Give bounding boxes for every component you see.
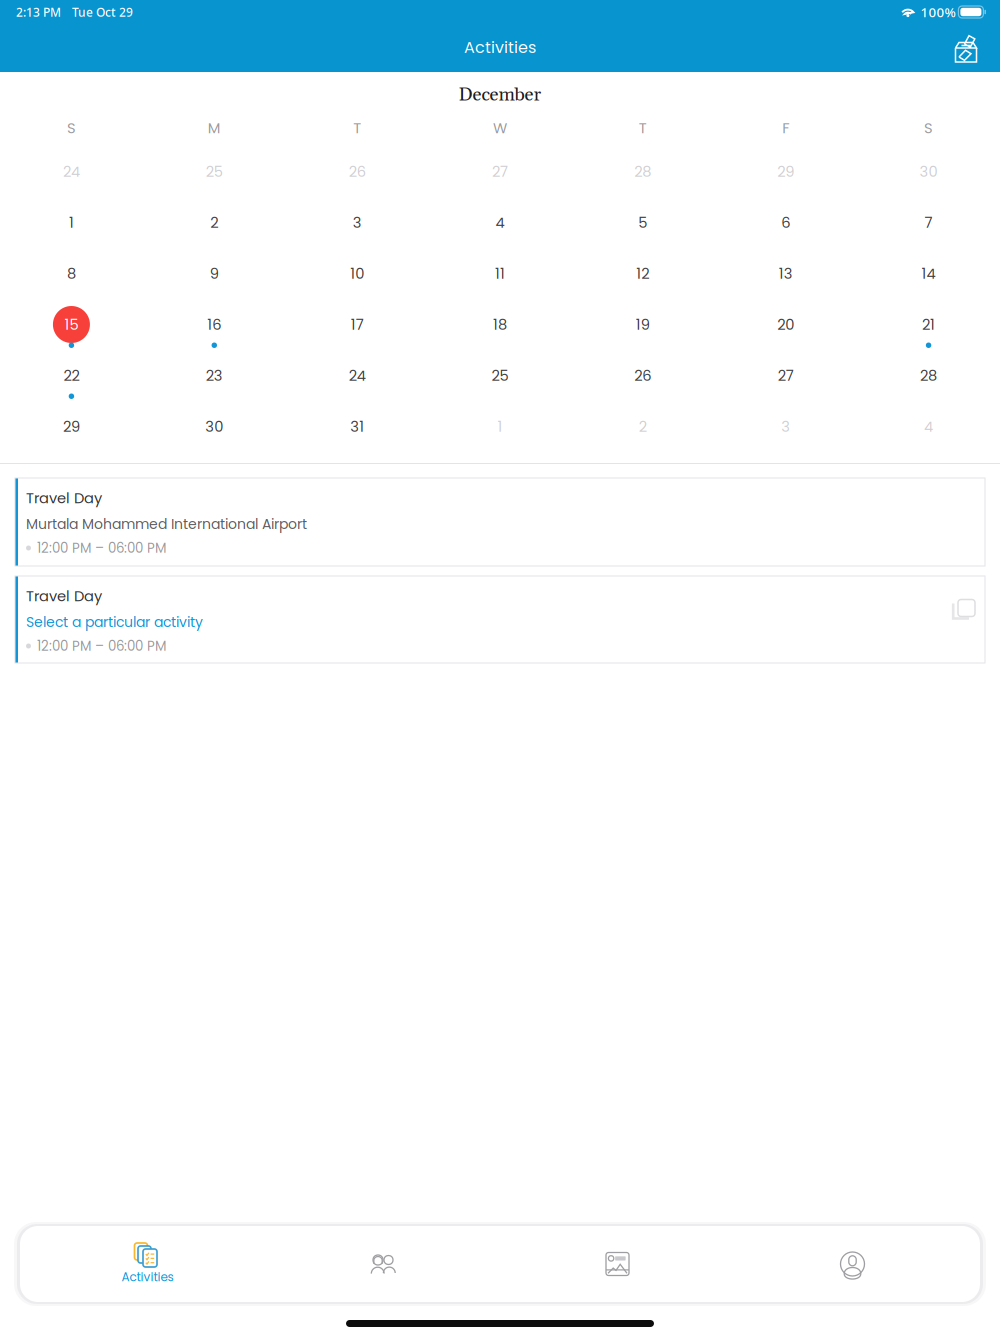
staticText: 6 <box>781 212 790 233</box>
staticText: Activities <box>121 1269 173 1285</box>
button[interactable]: 25 <box>143 146 286 197</box>
button[interactable]: 8 <box>0 248 143 299</box>
button[interactable]: 24 <box>286 350 429 401</box>
button[interactable]: Submit vote <box>946 30 986 69</box>
staticText: 31 <box>350 416 364 437</box>
staticText: 18 <box>493 314 507 335</box>
button[interactable]: 14 <box>857 248 1000 299</box>
staticText: 3 <box>353 212 362 233</box>
staticText: 12:00 PM – 06:00 PM <box>37 637 166 655</box>
button[interactable]: 25 <box>429 350 571 401</box>
staticText: S <box>924 118 933 138</box>
staticText: Travel Day <box>26 488 102 508</box>
staticText: Activities <box>464 36 536 59</box>
button[interactable]: 31 <box>286 401 429 452</box>
staticText: 10 <box>350 263 364 284</box>
staticText: T <box>639 118 647 138</box>
staticText: 28 <box>920 365 937 386</box>
staticText: 27 <box>778 365 794 386</box>
staticText: 23 <box>206 365 223 386</box>
button[interactable]: 24 <box>0 146 143 197</box>
button[interactable]: 7 <box>857 197 1000 248</box>
button[interactable]: 16 <box>143 299 286 350</box>
staticText: W <box>493 118 507 138</box>
staticText: 12 <box>636 263 649 284</box>
button[interactable]: 23 <box>143 350 286 401</box>
button[interactable]: 29 <box>0 401 143 452</box>
button[interactable]: 18 <box>429 299 571 350</box>
staticText: 29 <box>63 416 80 437</box>
button[interactable]: 1 <box>0 197 143 248</box>
staticText: 3 <box>781 416 790 437</box>
staticText: 14 <box>922 263 936 284</box>
staticText: 2 <box>210 212 218 233</box>
staticText: 28 <box>634 161 651 182</box>
button[interactable]: 22 <box>0 350 143 401</box>
staticText: 20 <box>777 314 794 335</box>
button[interactable]: 21 <box>857 299 1000 350</box>
staticText: 8 <box>67 263 76 284</box>
staticText: 27 <box>492 161 508 182</box>
button[interactable]: 13 <box>714 248 857 299</box>
staticText: 29 <box>777 161 794 182</box>
button[interactable]: 29 <box>714 146 857 197</box>
staticText: 15 <box>64 314 78 335</box>
staticText: 30 <box>205 416 223 437</box>
button[interactable]: 20 <box>714 299 857 350</box>
button[interactable]: Travel Day <box>0 478 1000 566</box>
staticText: 2 <box>639 416 647 437</box>
button[interactable]: 27 <box>714 350 857 401</box>
button[interactable]: 28 <box>571 146 714 197</box>
staticText: M <box>208 118 221 138</box>
staticText: 2:13 PM <box>16 4 61 20</box>
button[interactable]: 11 <box>429 248 571 299</box>
staticText: 24 <box>349 365 366 386</box>
staticText: 11 <box>495 263 505 284</box>
button[interactable]: People <box>265 1226 500 1302</box>
staticText: 4 <box>495 212 504 233</box>
button[interactable]: 15 <box>0 299 143 350</box>
staticText: 12:00 PM – 06:00 PM <box>37 539 166 557</box>
button[interactable]: 10 <box>286 248 429 299</box>
button[interactable]: 9 <box>143 248 286 299</box>
button[interactable]: Travel Day <box>0 576 1000 663</box>
staticText: 17 <box>351 314 364 335</box>
button[interactable]: 17 <box>286 299 429 350</box>
button[interactable]: 27 <box>429 146 571 197</box>
staticText: 22 <box>63 365 79 386</box>
staticText: 1 <box>497 416 502 437</box>
staticText: 9 <box>210 263 219 284</box>
staticText: 26 <box>349 161 366 182</box>
staticText: 24 <box>63 161 80 182</box>
staticText: S <box>67 118 76 138</box>
staticText: Select a particular activity <box>26 612 203 632</box>
button[interactable]: 2 <box>143 197 286 248</box>
staticText: 25 <box>206 161 223 182</box>
button[interactable]: 5 <box>571 197 714 248</box>
button[interactable]: 30 <box>857 146 1000 197</box>
button[interactable]: 3 <box>286 197 429 248</box>
button[interactable]: 4 <box>429 197 571 248</box>
staticText: 26 <box>634 365 651 386</box>
button[interactable]: Profile <box>735 1226 970 1302</box>
button[interactable]: 26 <box>571 350 714 401</box>
button[interactable]: Photos <box>500 1226 735 1302</box>
button[interactable]: 30 <box>143 401 286 452</box>
staticText: 25 <box>491 365 508 386</box>
button[interactable]: 28 <box>857 350 1000 401</box>
button[interactable]: 6 <box>714 197 857 248</box>
staticText: 7 <box>925 212 933 233</box>
button[interactable]: Activities <box>30 1226 265 1302</box>
button[interactable]: 12 <box>571 248 714 299</box>
staticText: 100% <box>920 3 955 21</box>
button[interactable]: 19 <box>571 299 714 350</box>
staticText: 30 <box>920 161 938 182</box>
staticText: Tue Oct 29 <box>72 4 133 20</box>
button[interactable]: 26 <box>286 146 429 197</box>
staticText: 1 <box>69 212 74 233</box>
staticText: 13 <box>779 263 793 284</box>
